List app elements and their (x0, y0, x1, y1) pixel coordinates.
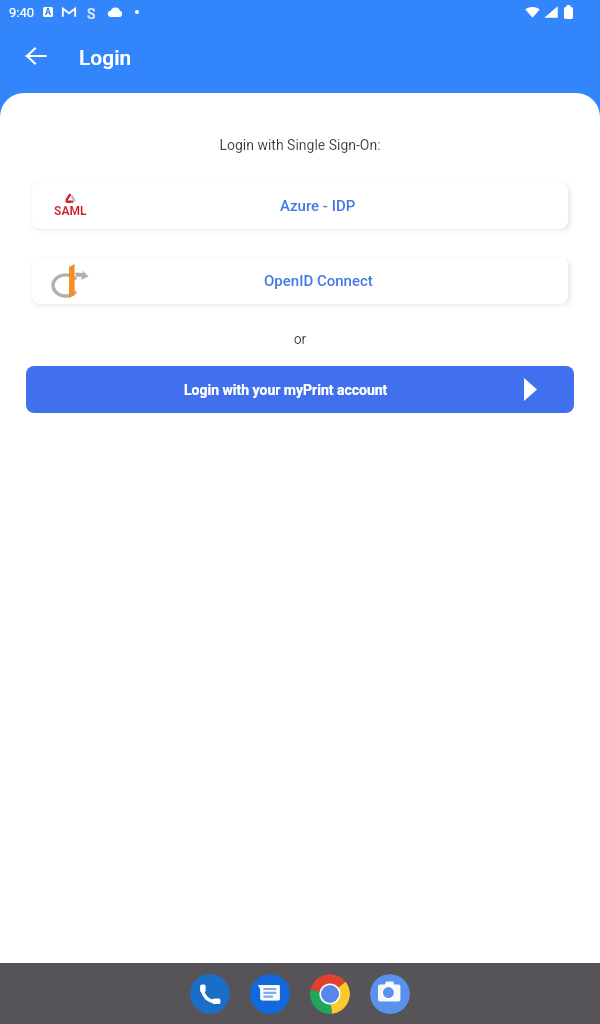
staticText: OpenID Connect (264, 272, 373, 290)
button[interactable]: Chrome (310, 974, 350, 1014)
button[interactable]: Camera (370, 974, 410, 1014)
button[interactable]: Login with your myPrint account (26, 366, 574, 413)
staticText: Login (79, 46, 132, 71)
staticText: Login with Single Sign-On: (0, 137, 600, 153)
staticText: S (87, 6, 96, 19)
button[interactable]: Phone (190, 974, 230, 1014)
button[interactable]: OpenID Connect (32, 257, 568, 304)
button[interactable]: Messages (250, 974, 290, 1014)
staticText: Azure - IDP (280, 197, 356, 215)
staticText: or (0, 331, 600, 347)
button[interactable]: Back (15, 35, 57, 77)
staticText: Login with your myPrint account (184, 382, 388, 398)
button[interactable]: SAML (32, 182, 568, 229)
staticText: A (45, 7, 52, 17)
staticText: SAML (54, 204, 87, 218)
staticText: 9:40 (9, 5, 35, 20)
